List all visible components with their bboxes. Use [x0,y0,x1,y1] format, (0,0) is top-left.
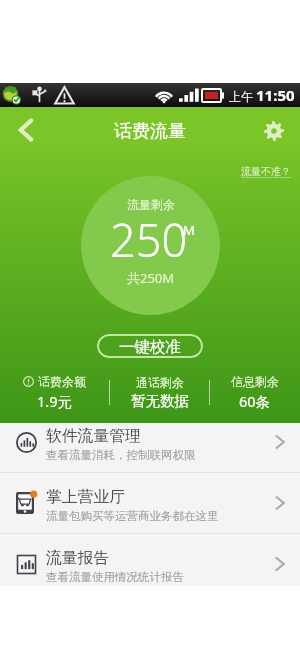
button[interactable]: 流量报告 [0,534,300,586]
staticText: 查看流量消耗，控制联网权限 [46,448,196,462]
staticText: 信息剩余 [231,374,279,389]
button[interactable]: 一键校准 [97,334,203,358]
staticText: 流量报告 [46,548,110,568]
button[interactable]: 流量不准？ [241,165,291,178]
staticText: 11:50 [256,85,295,105]
staticText: 通话剩余 [136,375,184,390]
button[interactable]: Settings [256,113,292,149]
button[interactable]: 信息剩余 [210,374,300,411]
staticText: 1.9元 [37,391,72,411]
button[interactable]: 通话剩余 [110,375,209,410]
staticText: 共250M [127,269,175,287]
staticText: M [183,221,195,239]
button[interactable]: 掌上营业厅 [0,473,300,533]
staticText: 暂无数据 [131,392,189,410]
staticText: 软件流量管理 [46,426,141,446]
staticText: 一键校准 [119,337,181,357]
button[interactable]: 软件流量管理 [0,423,300,472]
staticText: 话费余额 [38,374,86,389]
staticText: 掌上营业厅 [46,487,125,507]
staticText: 60条 [239,391,271,411]
staticText: 流量包购买等运营商业务都在这里 [46,509,219,523]
staticText: 上午 [229,89,253,104]
button[interactable]: Back [8,111,44,147]
button[interactable]: 话费余额 [0,374,109,411]
staticText: 流量剩余 [127,197,175,212]
staticText: 查看流量使用情况统计报告 [46,570,184,584]
staticText: 250 [110,209,188,270]
staticText: 话费流量 [114,120,186,143]
